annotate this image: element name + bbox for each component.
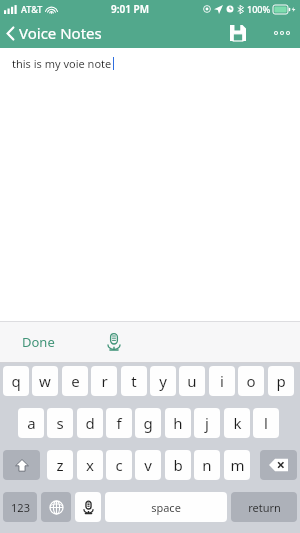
button[interactable]: w xyxy=(32,366,58,396)
button[interactable]: u xyxy=(179,366,205,396)
button[interactable]: r xyxy=(91,366,117,396)
button[interactable]: return xyxy=(231,492,297,522)
staticText: 123 xyxy=(11,500,30,515)
button[interactable]: 123 xyxy=(3,492,37,522)
staticText: u xyxy=(187,371,197,391)
staticText: b xyxy=(173,455,183,475)
button[interactable]: g xyxy=(135,408,161,438)
button[interactable]: space xyxy=(105,492,227,522)
staticText: w xyxy=(39,371,51,391)
staticText: l xyxy=(264,413,268,433)
staticText: q xyxy=(11,371,21,391)
staticText: d xyxy=(85,413,95,433)
staticText: a xyxy=(27,413,36,433)
staticText: g xyxy=(143,413,153,433)
button[interactable]: f xyxy=(106,408,132,438)
button[interactable]: l xyxy=(253,408,279,438)
staticText: t xyxy=(131,371,137,391)
button[interactable]: s xyxy=(47,408,73,438)
staticText: AT&T xyxy=(21,3,43,15)
button[interactable]: Shift xyxy=(3,450,40,480)
button[interactable]: this is my voie note xyxy=(0,48,300,321)
staticText: return xyxy=(248,500,281,515)
button[interactable]: h xyxy=(165,408,191,438)
button[interactable]: p xyxy=(268,366,294,396)
staticText: j xyxy=(205,413,209,433)
staticText: f xyxy=(116,413,122,433)
staticText: k xyxy=(233,413,242,433)
staticText: o xyxy=(246,371,256,391)
staticText: e xyxy=(71,371,80,391)
button[interactable]: z xyxy=(47,450,73,480)
button[interactable]: k xyxy=(224,408,250,438)
staticText: 9:01 PM xyxy=(111,2,149,16)
button[interactable]: j xyxy=(194,408,220,438)
button[interactable]: More options xyxy=(267,18,297,48)
button[interactable]: m xyxy=(224,450,250,480)
staticText: h xyxy=(173,413,183,433)
staticText: n xyxy=(202,455,212,475)
button[interactable]: n xyxy=(194,450,220,480)
staticText: Done xyxy=(22,333,55,351)
staticText: c xyxy=(115,455,123,475)
button[interactable]: x xyxy=(77,450,103,480)
button[interactable]: Done xyxy=(0,325,77,359)
button[interactable]: d xyxy=(77,408,103,438)
staticText: x xyxy=(86,455,94,475)
button[interactable]: c xyxy=(106,450,132,480)
button[interactable]: b xyxy=(165,450,191,480)
button[interactable]: e xyxy=(62,366,88,396)
button[interactable]: i xyxy=(209,366,235,396)
button[interactable]: o xyxy=(238,366,264,396)
staticText: i xyxy=(220,371,224,391)
button[interactable]: Backspace xyxy=(260,450,297,480)
staticText: r xyxy=(101,371,108,391)
button[interactable]: a xyxy=(18,408,44,438)
staticText: Voice Notes xyxy=(19,23,102,43)
button[interactable]: Record voice note xyxy=(99,327,129,357)
staticText: y xyxy=(159,371,167,391)
staticText: p xyxy=(276,371,286,391)
button[interactable]: q xyxy=(3,366,29,396)
button[interactable]: v xyxy=(135,450,161,480)
button[interactable]: Voice Notes xyxy=(0,19,110,47)
staticText: v xyxy=(144,455,152,475)
staticText: z xyxy=(56,455,64,475)
staticText: s xyxy=(56,413,64,433)
button[interactable]: Switch keyboard xyxy=(41,492,71,522)
button[interactable]: t xyxy=(121,366,147,396)
staticText: this is my voie note xyxy=(12,56,112,71)
staticText: space xyxy=(151,500,181,515)
staticText: 100% xyxy=(247,3,271,15)
button[interactable]: Dictate xyxy=(75,492,101,522)
staticText: m xyxy=(230,455,245,475)
button[interactable]: y xyxy=(150,366,176,396)
button[interactable]: Save xyxy=(223,18,253,48)
